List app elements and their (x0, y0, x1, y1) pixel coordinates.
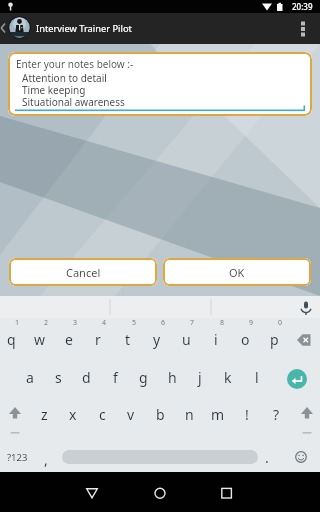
button[interactable] (62, 450, 258, 464)
staticText: ! (245, 405, 249, 424)
button[interactable] (294, 16, 312, 41)
button[interactable]: r (86, 328, 110, 350)
staticText: 0 (278, 318, 283, 328)
button[interactable] (292, 448, 310, 466)
staticText: o (241, 330, 250, 349)
button[interactable] (297, 404, 317, 424)
staticText: v (127, 405, 135, 424)
staticText: k (224, 368, 232, 387)
button[interactable]: v (119, 403, 143, 425)
button[interactable]: u (174, 328, 198, 350)
button[interactable]: OK (163, 258, 311, 286)
button[interactable] (287, 369, 307, 389)
staticText: 2 (44, 318, 49, 328)
button[interactable]: l (245, 366, 269, 388)
button[interactable]: y (145, 328, 169, 350)
staticText: c (99, 405, 106, 424)
button[interactable]: h (160, 366, 184, 388)
button[interactable]: e (57, 328, 81, 350)
staticText: z (41, 405, 48, 424)
button[interactable]: f (103, 366, 127, 388)
button[interactable]: p (262, 328, 286, 350)
staticText: ? (273, 405, 280, 424)
staticText: 8 (220, 318, 225, 328)
staticText: ?123 (7, 451, 28, 464)
button[interactable]: m (206, 403, 230, 425)
staticText: u (182, 330, 191, 349)
staticText: s (55, 368, 62, 387)
staticText: d (82, 368, 91, 387)
staticText: Enter your notes below :- (16, 57, 134, 71)
staticText: 9 (249, 318, 254, 328)
staticText: 1 (15, 318, 20, 328)
button[interactable]: b (148, 403, 172, 425)
staticText: x (69, 405, 77, 424)
button[interactable]: ?123 (4, 448, 30, 466)
button[interactable]: g (131, 366, 155, 388)
button[interactable]: q (0, 328, 23, 350)
button[interactable]: w (28, 328, 52, 350)
button[interactable]: a (18, 366, 42, 388)
staticText: . (265, 448, 269, 467)
button[interactable] (78, 478, 106, 506)
staticText: h (168, 368, 177, 387)
staticText: Interview Trainer Pilot (36, 22, 132, 35)
button[interactable] (292, 296, 320, 318)
staticText: e (65, 330, 73, 349)
staticText: 3 (73, 318, 78, 328)
button[interactable] (213, 478, 241, 506)
staticText: 5 (132, 318, 137, 328)
staticText: y (153, 330, 161, 349)
staticText: 4 (102, 318, 107, 328)
staticText: 6 (161, 318, 166, 328)
button[interactable] (6, 404, 26, 424)
button[interactable] (295, 330, 315, 348)
staticText: OK (229, 265, 245, 280)
button[interactable]: c (90, 403, 114, 425)
button[interactable]: i (204, 328, 228, 350)
staticText: Situational awareness (22, 95, 125, 109)
button[interactable]: ! (235, 403, 259, 425)
button[interactable]: o (233, 328, 257, 350)
button[interactable]: t (116, 328, 140, 350)
staticText: a (26, 368, 34, 387)
button[interactable]: x (61, 403, 85, 425)
staticText: m (211, 405, 225, 424)
staticText: , (44, 450, 48, 469)
staticText: w (34, 330, 46, 349)
button[interactable]: Cancel (9, 258, 157, 286)
staticText: f (113, 368, 118, 387)
staticText: n (185, 405, 194, 424)
staticText: q (7, 330, 16, 349)
staticText: Cancel (66, 265, 101, 280)
staticText: l (255, 368, 259, 387)
button[interactable]: j (188, 366, 212, 388)
staticText: Attention to detail (22, 71, 107, 85)
button[interactable]: s (46, 366, 70, 388)
staticText: 20:39 (292, 1, 313, 12)
button[interactable]: , (37, 448, 55, 470)
button[interactable] (8, 52, 312, 116)
staticText: j (198, 368, 202, 387)
button[interactable]: ? (264, 403, 288, 425)
button[interactable]: z (32, 403, 56, 425)
button[interactable]: k (216, 366, 240, 388)
staticText: g (139, 368, 148, 387)
staticText: i (214, 330, 218, 349)
button[interactable] (146, 478, 174, 506)
button[interactable]: n (177, 403, 201, 425)
staticText: b (156, 405, 165, 424)
button[interactable]: d (74, 366, 98, 388)
staticText: 7 (190, 318, 195, 328)
staticText: p (270, 330, 279, 349)
staticText: r (95, 330, 101, 349)
button[interactable]: . (258, 446, 276, 468)
staticText: t (125, 330, 131, 349)
staticText: Time keeping (22, 83, 86, 97)
